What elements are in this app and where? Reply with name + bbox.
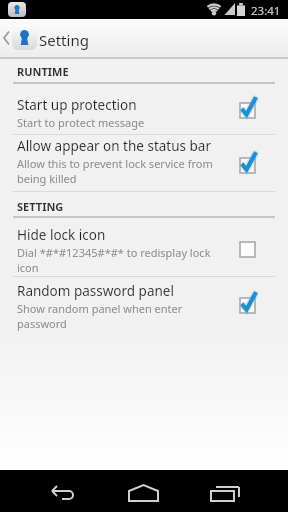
staticText: 23:41	[251, 3, 281, 19]
button[interactable]	[46, 478, 82, 504]
staticText: Allow this to prevent lock service from	[17, 156, 213, 171]
staticText: Random password panel	[17, 282, 174, 300]
button[interactable]: Random password panel	[0, 276, 288, 334]
button[interactable]: Start up protection	[0, 90, 288, 132]
staticText: Allow appear on the status bar	[17, 137, 211, 155]
staticText: icon	[17, 260, 39, 275]
staticText: being killed	[17, 171, 77, 186]
staticText: password	[17, 316, 67, 331]
button[interactable]	[0, 19, 288, 57]
button[interactable]	[122, 478, 166, 504]
staticText: Setting	[39, 30, 89, 50]
staticText: Hide lock icon	[17, 226, 106, 244]
staticText: Show random panel when enter	[17, 301, 183, 316]
staticText: RUNTIME	[17, 64, 69, 79]
button[interactable]: Hide lock icon	[0, 220, 288, 276]
button[interactable]	[202, 478, 244, 504]
staticText: Start to protect message	[17, 115, 145, 130]
staticText: Dial *#*#12345#*#* to redisplay lock	[17, 245, 211, 260]
button[interactable]: Allow appear on the status bar	[0, 131, 288, 189]
staticText: Start up protection	[17, 96, 137, 114]
staticText: SETTING	[17, 199, 64, 214]
